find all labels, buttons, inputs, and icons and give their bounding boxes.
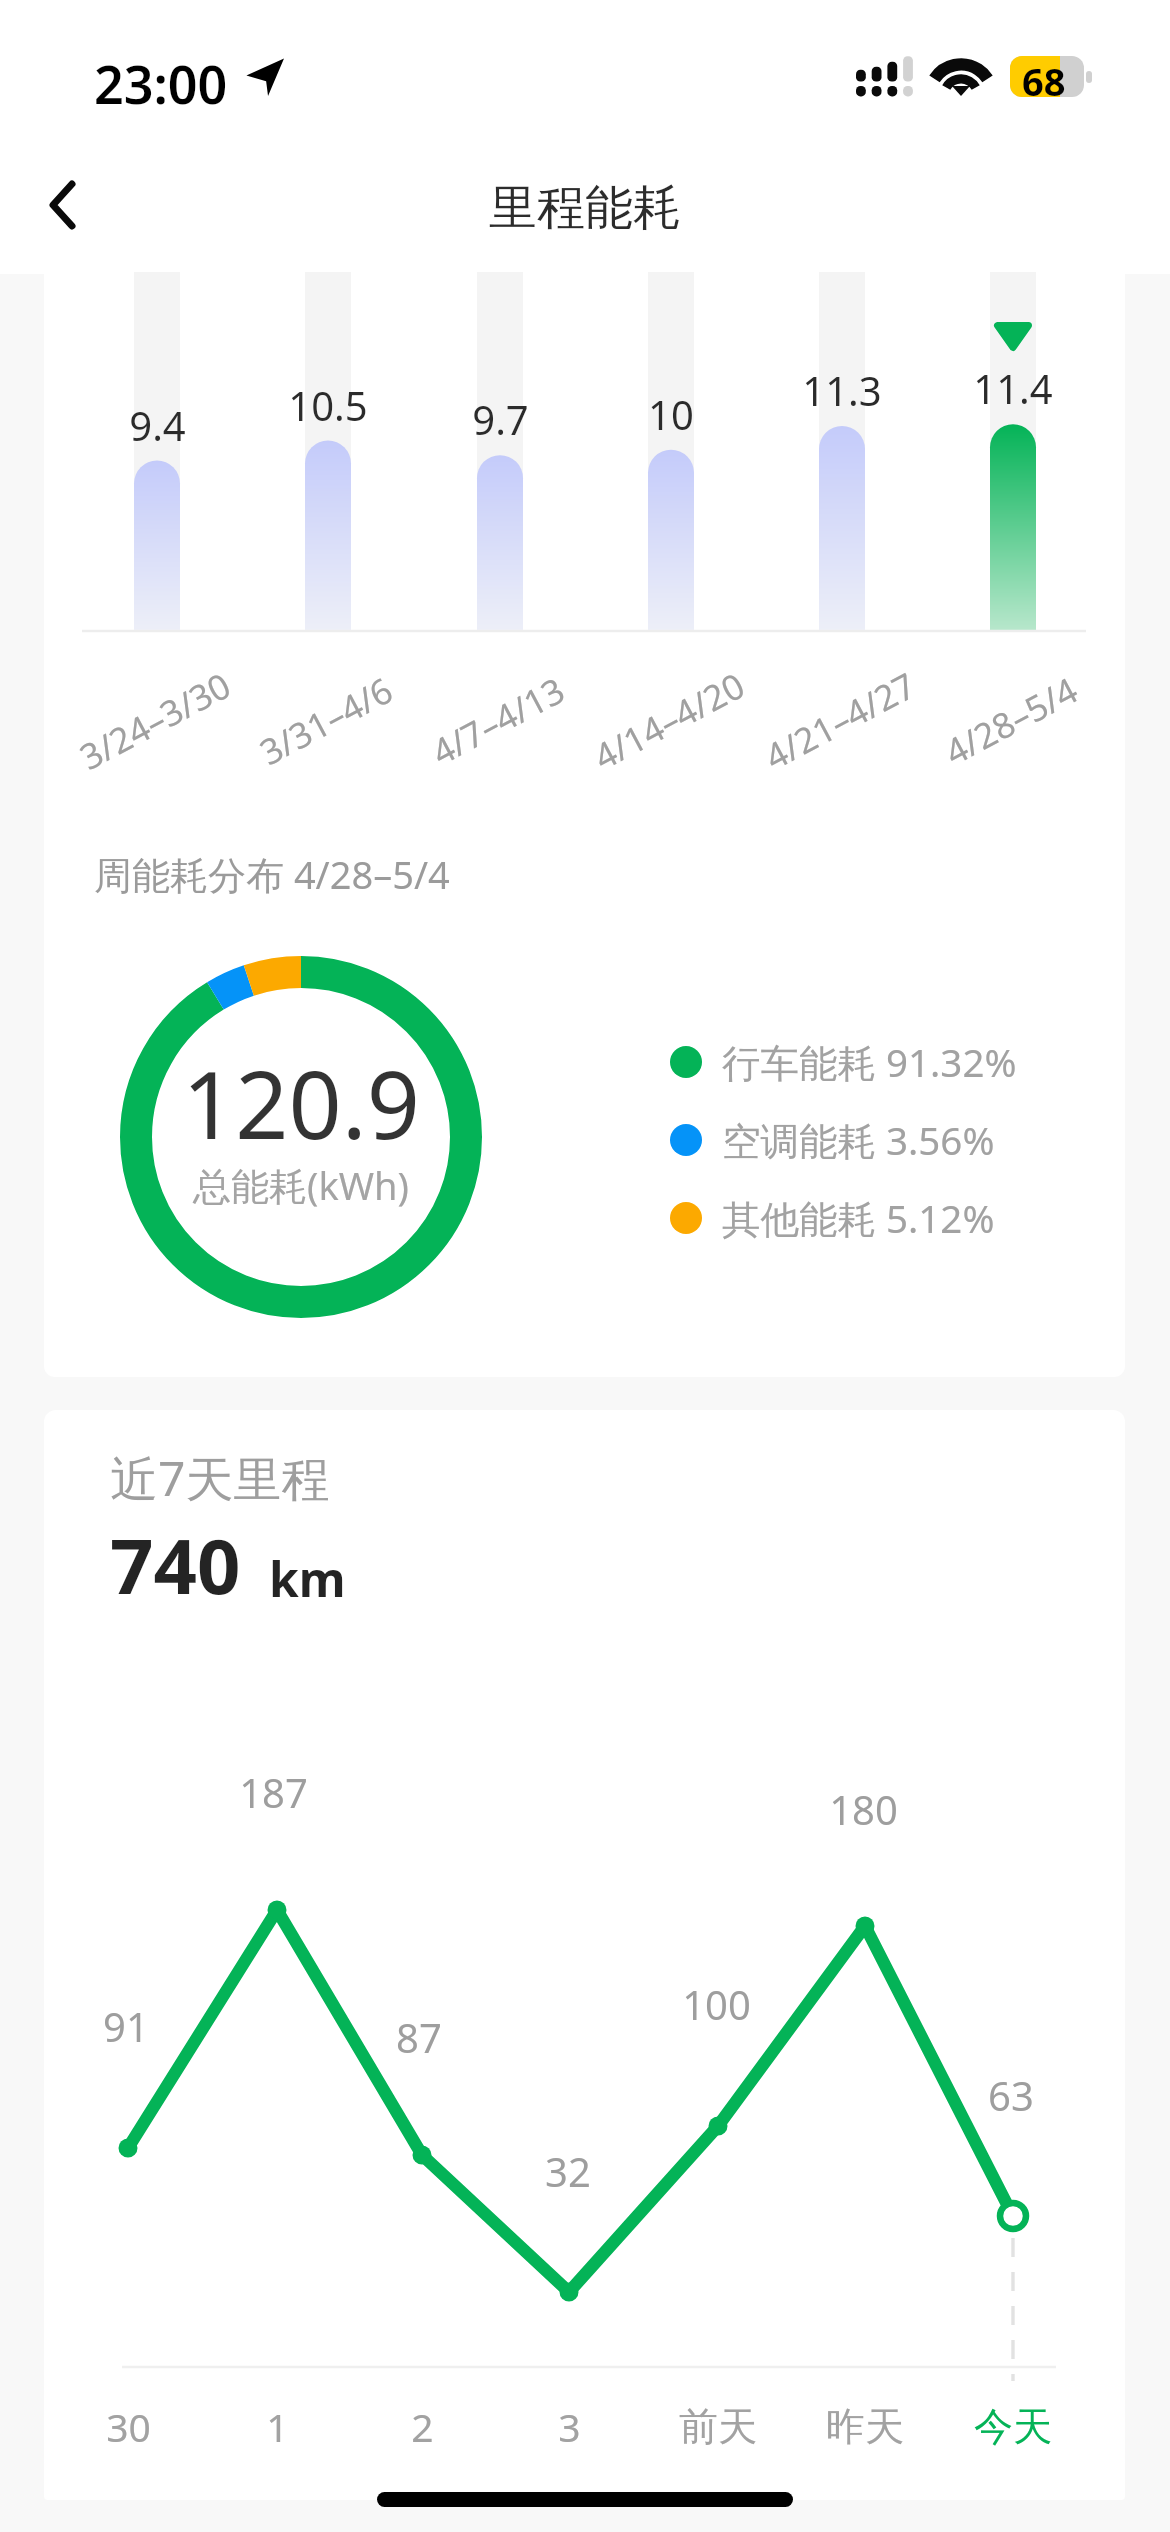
staticText: 里程能耗: [489, 178, 681, 238]
staticText: 10.5: [288, 378, 368, 432]
button[interactable]: Back: [10, 152, 116, 258]
staticText: 187: [239, 1765, 308, 1819]
button[interactable]: 4/7–4/13 9.7: [477, 272, 523, 631]
button[interactable]: 4/21–4/27 11.3: [819, 272, 865, 631]
staticText: km: [269, 1546, 346, 1611]
staticText: 9.4: [129, 398, 186, 452]
staticText: 昨天: [826, 2402, 904, 2451]
staticText: 总能耗(kWh): [193, 1159, 409, 1211]
staticText: 3/31–4/6: [251, 666, 401, 776]
button[interactable]: 行车能耗 91.32%: [664, 1033, 1017, 1091]
staticText: 68: [1022, 56, 1066, 96]
button[interactable]: 今天: [953, 2393, 1073, 2459]
staticText: 10: [648, 387, 694, 441]
button[interactable]: 前天: [658, 2393, 778, 2459]
staticText: 87: [396, 2010, 442, 2064]
staticText: 9.7: [472, 392, 529, 446]
button[interactable]: 总能耗 120.9 kWh: [120, 956, 482, 1318]
button[interactable]: 空调能耗 3.56%: [664, 1111, 995, 1169]
staticText: 91: [103, 1999, 149, 2053]
staticText: 740: [110, 1513, 241, 1613]
staticText: 空调能耗 3.56%: [722, 1114, 995, 1167]
staticText: 32: [545, 2144, 591, 2198]
staticText: 周能耗分布 4/28–5/4: [94, 848, 450, 900]
staticText: 2: [411, 2400, 434, 2453]
staticText: 其他能耗 5.12%: [722, 1192, 995, 1245]
staticText: 4/28–5/4: [936, 666, 1086, 776]
button[interactable]: 4/28–5/4 11.4: [990, 272, 1036, 631]
staticText: 180: [829, 1782, 898, 1836]
button[interactable]: 1: [217, 2393, 337, 2459]
button[interactable]: 3: [509, 2393, 629, 2459]
staticText: 3/24–3/30: [71, 661, 239, 781]
button[interactable]: 3/24–3/30 9.4: [134, 272, 180, 631]
staticText: 前天: [679, 2402, 757, 2451]
staticText: 行车能耗 91.32%: [722, 1036, 1017, 1089]
staticText: 4/21–4/27: [756, 661, 924, 781]
button[interactable]: 其他能耗 5.12%: [664, 1189, 995, 1247]
staticText: 63: [988, 2068, 1034, 2122]
staticText: 近7天里程: [110, 1445, 330, 1511]
button[interactable]: 昨天: [805, 2393, 925, 2459]
staticText: 1: [266, 2400, 289, 2453]
button[interactable]: 2: [362, 2393, 482, 2459]
staticText: 11.3: [802, 363, 882, 417]
staticText: 4/7–4/13: [423, 666, 573, 776]
staticText: 30: [106, 2400, 151, 2453]
staticText: 3: [558, 2400, 581, 2453]
staticText: 11.4: [973, 361, 1053, 415]
staticText: 4/14–4/20: [585, 661, 753, 781]
staticText: 今天: [974, 2402, 1052, 2451]
staticText: 120.9: [182, 1040, 420, 1167]
button[interactable]: 3/31–4/6 10.5: [305, 272, 351, 631]
staticText: 100: [682, 1977, 751, 2031]
button[interactable]: 30: [68, 2393, 188, 2459]
staticText: 23:00: [94, 48, 228, 106]
button[interactable]: 4/14–4/20 10: [648, 272, 694, 631]
